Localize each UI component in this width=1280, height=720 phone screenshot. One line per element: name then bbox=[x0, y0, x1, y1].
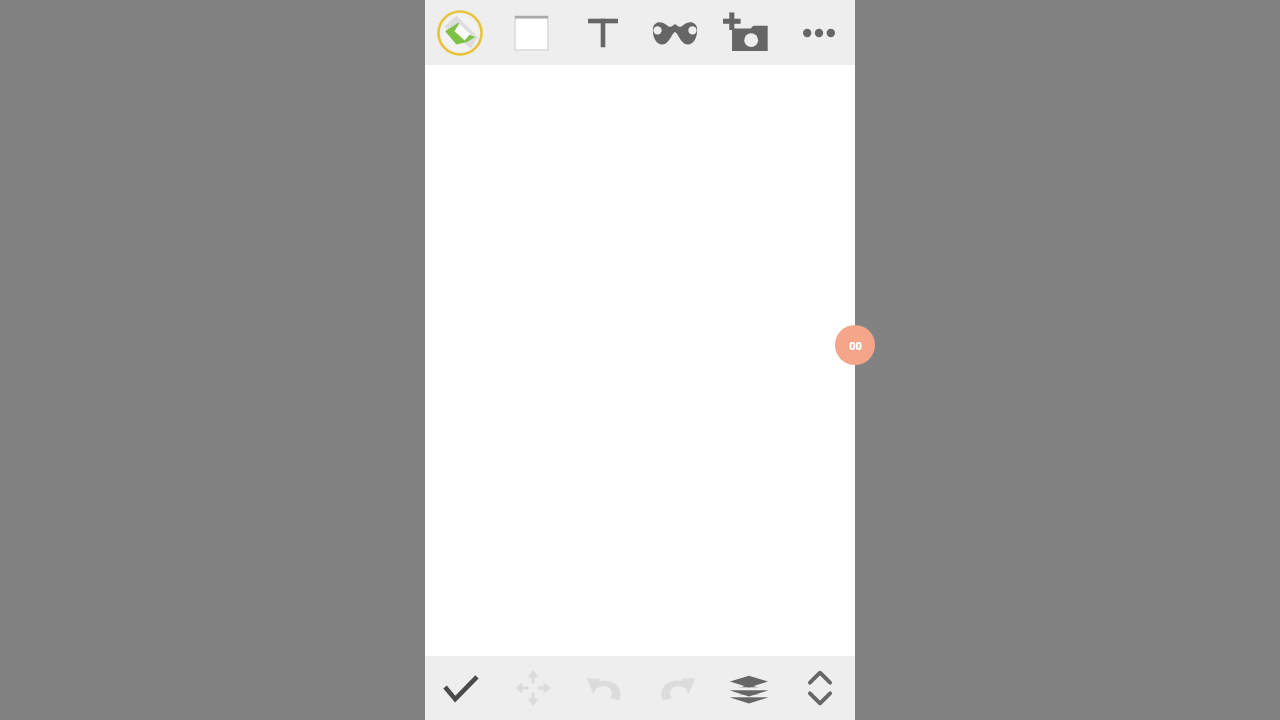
button[interactable]: Color bbox=[495, 0, 567, 65]
button[interactable]: Move bbox=[497, 656, 569, 720]
button[interactable]: Undo bbox=[569, 656, 641, 720]
button[interactable]: Reorder bbox=[785, 656, 855, 720]
button[interactable]: Layers bbox=[713, 656, 785, 720]
button[interactable]: Redo bbox=[641, 656, 713, 720]
button[interactable]: Stickers bbox=[639, 0, 711, 65]
button[interactable]: Add photo bbox=[711, 0, 783, 65]
button[interactable]: Brush bbox=[425, 0, 495, 65]
staticText: 00 bbox=[849, 338, 862, 353]
button[interactable]: More options bbox=[783, 0, 855, 65]
button[interactable]: Timer badge bbox=[835, 325, 875, 365]
button[interactable]: Done bbox=[425, 656, 497, 720]
button[interactable]: Text tool bbox=[567, 0, 639, 65]
